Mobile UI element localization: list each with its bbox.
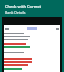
staticText: Check with Correct — [5, 4, 42, 9]
button[interactable]: Check with Correct — [0, 0, 64, 17]
staticText: Bank Details — [5, 10, 26, 15]
